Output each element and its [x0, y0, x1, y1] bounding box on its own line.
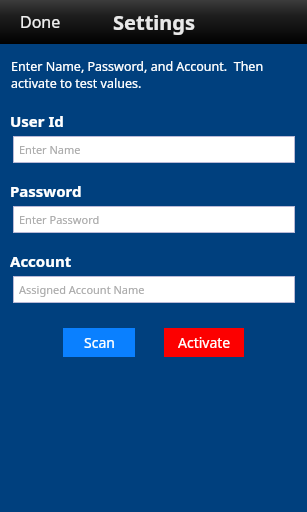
staticText: Assigned Account Name — [19, 282, 145, 297]
button[interactable]: Activate — [164, 328, 244, 357]
staticText: Enter Name, Password, and Account. Then … — [11, 58, 297, 92]
staticText: Account — [10, 251, 72, 271]
staticText: Enter Password — [19, 212, 100, 227]
staticText: Settings — [113, 9, 195, 36]
staticText: Done — [20, 11, 61, 33]
button[interactable]: Assigned Account Name — [13, 276, 295, 303]
staticText: Password — [10, 181, 82, 201]
staticText: User Id — [10, 111, 64, 131]
staticText: Scan — [84, 333, 115, 352]
button[interactable]: Done — [14, 7, 67, 37]
button[interactable]: Enter Name — [13, 136, 295, 163]
staticText: Activate — [178, 333, 231, 352]
button[interactable]: Scan — [63, 328, 135, 357]
button[interactable]: Enter Password — [13, 206, 295, 233]
staticText: Enter Name — [19, 142, 81, 157]
